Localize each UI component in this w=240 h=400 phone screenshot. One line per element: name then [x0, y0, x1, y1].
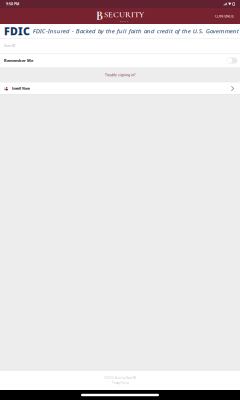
button[interactable]: Enroll Now — [0, 82, 240, 94]
staticText: B — [96, 9, 103, 23]
button[interactable]: CONTINUE — [209, 9, 240, 23]
staticText: ©2024 Security Bank SB — [104, 376, 136, 380]
staticText: FDIC — [4, 24, 30, 38]
staticText: CONTINUE — [215, 13, 234, 19]
staticText: Trouble signing in? — [105, 73, 135, 77]
staticText: Enroll Now — [12, 86, 30, 91]
staticText: Remember Me — [4, 58, 33, 63]
staticText: FDIC-Insured - Backed by the full faith … — [33, 27, 239, 35]
button[interactable]: Privacy Policy — [111, 381, 128, 385]
button[interactable]: Remember Me toggle — [226, 57, 237, 64]
staticText: User ID — [4, 43, 15, 48]
staticText: SECURITY — [104, 9, 144, 20]
button[interactable]: Trouble signing in? — [0, 67, 240, 82]
staticText: B A N K — [120, 20, 128, 23]
staticText: Privacy Policy — [111, 381, 128, 385]
staticText: 9:58 PM — [6, 2, 19, 6]
